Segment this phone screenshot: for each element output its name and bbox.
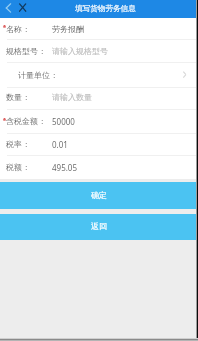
button[interactable]: 计量单位： xyxy=(0,63,198,88)
staticText: 劳务报酬 xyxy=(52,24,84,34)
staticText: 税率： xyxy=(6,139,30,149)
staticText: 计量单位： xyxy=(18,70,58,80)
staticText: 填写货物劳务信息 xyxy=(75,4,136,14)
staticText: 50000 xyxy=(52,116,75,127)
staticText: 请输入规格型号 xyxy=(52,46,108,56)
staticText: 名称： xyxy=(6,24,30,34)
button[interactable]: 确定 xyxy=(0,182,198,209)
button[interactable]: Back xyxy=(2,2,15,14)
staticText: 数量： xyxy=(6,92,30,102)
staticText: 返回 xyxy=(91,221,107,231)
staticText: 请输入数量 xyxy=(52,92,92,102)
button[interactable]: 名称： xyxy=(0,18,198,40)
button[interactable]: 税率： xyxy=(0,134,198,156)
button[interactable]: 含税金额： xyxy=(0,110,198,134)
staticText: 规格型号： xyxy=(6,46,46,56)
button[interactable]: Close xyxy=(16,2,29,14)
button[interactable]: 规格型号： xyxy=(0,40,198,63)
button[interactable]: 数量： xyxy=(0,87,198,110)
staticText: 确定 xyxy=(91,190,107,200)
staticText: 含税金额： xyxy=(6,116,46,126)
staticText: 税额： xyxy=(6,162,30,172)
button[interactable]: 返回 xyxy=(0,214,198,240)
staticText: 0.01 xyxy=(52,139,68,150)
staticText: 495.05 xyxy=(52,162,78,173)
button[interactable]: 税额： xyxy=(0,156,198,179)
